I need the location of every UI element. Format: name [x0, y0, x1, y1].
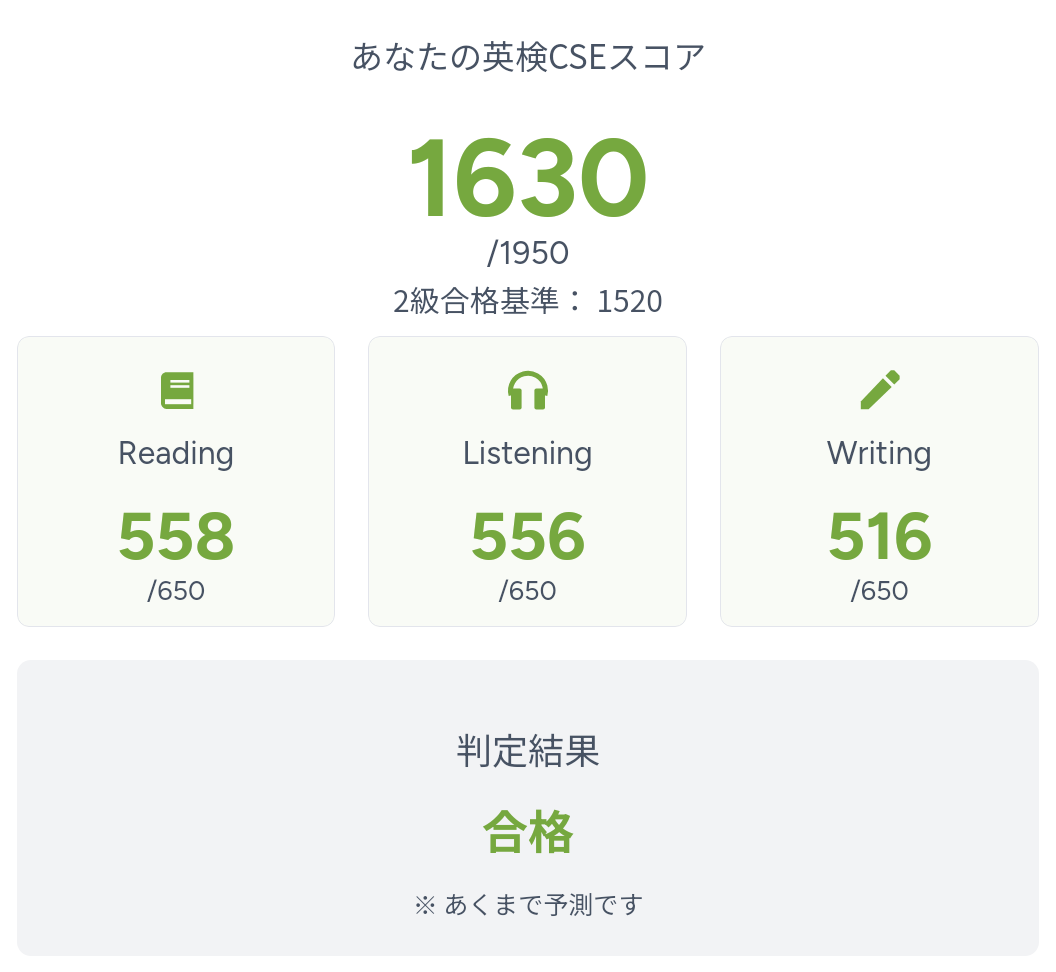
- staticText: 合格: [17, 796, 1039, 863]
- button[interactable]: Writing: [720, 336, 1039, 627]
- other: Reading: [156, 370, 196, 410]
- staticText: 判定結果: [17, 722, 1039, 774]
- staticText: /650: [720, 574, 1039, 606]
- staticText: Listening: [368, 434, 687, 472]
- button[interactable]: Reading: [17, 336, 335, 627]
- staticText: 1630: [0, 111, 1056, 243]
- staticText: 2級合格基準： 1520: [0, 277, 1056, 320]
- staticText: 558: [17, 495, 335, 575]
- staticText: ※ あくまで予測です: [17, 885, 1039, 921]
- staticText: /650: [17, 574, 335, 606]
- staticText: あなたの英検CSEスコア: [0, 31, 1056, 79]
- staticText: Reading: [17, 434, 335, 472]
- staticText: 516: [720, 495, 1039, 575]
- other: Writing: [860, 370, 900, 410]
- staticText: /1950: [0, 234, 1056, 272]
- button[interactable]: 判定結果: [17, 660, 1039, 956]
- staticText: 556: [368, 495, 687, 575]
- staticText: Writing: [720, 434, 1039, 472]
- button[interactable]: Listening: [368, 336, 687, 627]
- staticText: /650: [368, 574, 687, 606]
- other: Listening: [508, 370, 548, 410]
